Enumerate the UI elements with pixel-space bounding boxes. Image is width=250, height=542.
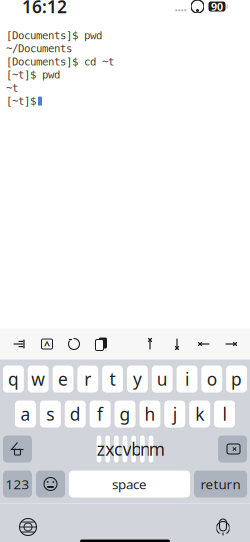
staticText: t <box>110 367 116 390</box>
staticText: i <box>185 367 189 390</box>
staticText: s <box>46 402 54 425</box>
staticText: [Documents]$ pwd <box>6 29 102 42</box>
button[interactable]: Right <box>224 337 238 351</box>
button[interactable]: r <box>77 365 98 392</box>
button[interactable]: Shift <box>3 435 32 462</box>
staticText: ^ <box>44 338 50 352</box>
staticText: x <box>105 437 110 460</box>
button[interactable]: o <box>201 365 222 392</box>
button[interactable]: Delete <box>218 435 247 462</box>
staticText: o <box>207 367 217 390</box>
button[interactable]: b <box>131 435 136 462</box>
staticText: [Documents]$ cd ~t <box>6 56 114 68</box>
staticText: b <box>131 437 136 460</box>
staticText: k <box>195 402 204 425</box>
button[interactable]: e <box>53 365 73 392</box>
staticText: e <box>58 367 68 390</box>
staticText: 16:12 <box>22 0 67 18</box>
button[interactable]: q <box>3 365 24 392</box>
button[interactable]: t <box>102 365 123 392</box>
staticText: m <box>149 437 153 460</box>
button[interactable]: n <box>140 435 145 462</box>
staticText: l <box>223 402 227 425</box>
button[interactable]: Emoji <box>36 470 65 497</box>
button[interactable]: m <box>149 435 153 462</box>
staticText: c <box>114 437 119 460</box>
staticText: v <box>123 437 127 460</box>
staticText: 123 <box>5 475 29 493</box>
button[interactable]: p <box>226 365 247 392</box>
button[interactable]: Tab <box>12 337 27 351</box>
staticText: return <box>200 475 240 493</box>
staticText: w <box>31 367 45 390</box>
button[interactable]: c <box>114 435 119 462</box>
staticText: ~/Documents <box>6 43 72 55</box>
button[interactable]: return <box>194 470 247 497</box>
button[interactable]: w <box>28 365 49 392</box>
button[interactable]: Left <box>197 337 211 351</box>
button[interactable]: u <box>152 365 173 392</box>
staticText: y <box>133 367 142 390</box>
staticText: j <box>173 402 177 425</box>
button[interactable]: Paste <box>94 337 108 351</box>
button[interactable]: g <box>115 400 135 427</box>
button[interactable]: h <box>139 400 160 427</box>
button[interactable]: Up <box>143 337 157 351</box>
staticText: f <box>97 402 103 425</box>
button[interactable]: History <box>67 337 81 351</box>
button[interactable]: space <box>69 470 190 497</box>
staticText: p <box>231 367 242 390</box>
button[interactable]: i <box>177 365 197 392</box>
button[interactable]: 123 <box>3 470 32 497</box>
staticText: r <box>84 367 91 390</box>
button[interactable]: Down <box>170 337 184 351</box>
button[interactable]: x <box>105 435 110 462</box>
staticText: space <box>112 475 147 493</box>
button[interactable]: k <box>189 400 210 427</box>
button[interactable]: j <box>164 400 185 427</box>
button[interactable]: Control <box>40 337 54 351</box>
button[interactable]: s <box>40 400 61 427</box>
staticText: z <box>97 437 101 460</box>
staticText: g <box>119 402 130 425</box>
button[interactable]: Dictation <box>214 517 232 537</box>
staticText: d <box>70 402 81 425</box>
staticText: a <box>20 402 30 425</box>
button[interactable]: y <box>127 365 148 392</box>
staticText: n <box>140 437 145 460</box>
button[interactable]: d <box>65 400 86 427</box>
staticText: q <box>8 367 19 390</box>
button[interactable]: f <box>90 400 111 427</box>
button[interactable]: v <box>123 435 127 462</box>
staticText: h <box>144 402 155 425</box>
staticText: u <box>157 367 168 390</box>
button[interactable]: a <box>15 400 36 427</box>
staticText: .... <box>174 0 186 14</box>
staticText: ~t <box>6 82 18 94</box>
button[interactable]: l <box>214 400 235 427</box>
button[interactable]: z <box>97 435 101 462</box>
staticText: [~t]$ pwd <box>6 69 60 81</box>
staticText: 90 <box>211 0 223 14</box>
button[interactable]: Next keyboard <box>18 517 38 537</box>
staticText: [~t]$ <box>6 95 36 107</box>
